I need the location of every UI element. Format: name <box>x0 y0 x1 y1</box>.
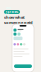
button[interactable] <box>14 64 32 68</box>
staticText: someone paid <box>4 20 33 25</box>
button[interactable]: NEW PAYMENTS <box>4 10 20 14</box>
staticText: NEW PAYMENTS <box>5 7 18 17</box>
staticText: show what <box>4 14 25 20</box>
